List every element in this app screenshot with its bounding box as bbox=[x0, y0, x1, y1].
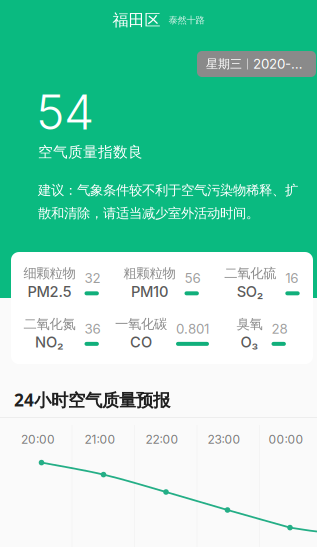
staticText: 建议：气象条件较不利于空气污染物稀释、扩 bbox=[38, 182, 298, 199]
staticText: 32 bbox=[84, 270, 100, 286]
staticText: NO₂ bbox=[35, 333, 64, 351]
staticText: O₃ bbox=[240, 333, 258, 351]
staticText: 二氧化氮 bbox=[23, 315, 75, 332]
staticText: 二氧化硫 bbox=[224, 265, 276, 282]
button[interactable]: 二氧化硫 bbox=[212, 265, 312, 300]
staticText: 24小时空气质量预报 bbox=[14, 388, 170, 412]
staticText: 54 bbox=[36, 83, 94, 141]
staticText: CO bbox=[130, 333, 152, 351]
button[interactable]: 一氧化碳 bbox=[112, 315, 212, 351]
staticText: 细颗粒物 bbox=[23, 265, 75, 282]
staticText: PM10 bbox=[131, 283, 168, 300]
staticText: 16 bbox=[285, 270, 298, 286]
button[interactable]: 细颗粒物 bbox=[12, 265, 112, 300]
staticText: 0.801 bbox=[176, 321, 209, 337]
staticText: 空气质量指数良 bbox=[38, 143, 143, 161]
staticText: 星期三 bbox=[206, 56, 242, 71]
staticText: PM2.5 bbox=[27, 283, 71, 300]
staticText: 20:00 bbox=[21, 432, 55, 446]
staticText: 臭氧 bbox=[236, 315, 262, 332]
staticText: 粗颗粒物 bbox=[123, 265, 175, 282]
staticText: 散和清除，请适当减少室外活动时间。 bbox=[38, 205, 259, 222]
button[interactable]: 二氧化氮 bbox=[12, 315, 112, 351]
staticText: 00:00 bbox=[268, 432, 303, 446]
staticText: 福田区 bbox=[112, 10, 160, 30]
staticText: 23:00 bbox=[207, 432, 240, 446]
staticText: SO₂ bbox=[237, 283, 264, 300]
staticText: 泰然十路 bbox=[168, 14, 204, 26]
staticText: 2020-12-16 bbox=[253, 56, 307, 72]
staticText: 一氧化碳 bbox=[115, 315, 167, 332]
staticText: 22:00 bbox=[145, 432, 178, 446]
staticText: 56 bbox=[184, 270, 200, 286]
staticText: 21:00 bbox=[84, 432, 115, 446]
staticText: 28 bbox=[271, 321, 287, 337]
staticText: 36 bbox=[84, 321, 100, 337]
button[interactable]: 臭氧 bbox=[212, 315, 312, 351]
button[interactable]: 粗颗粒物 bbox=[112, 265, 212, 300]
